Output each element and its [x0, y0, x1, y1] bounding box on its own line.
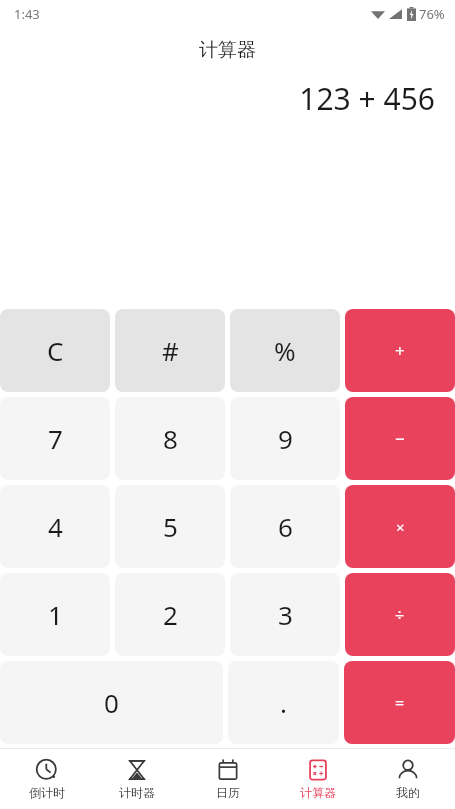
button[interactable]: ÷ — [345, 573, 455, 656]
button[interactable]: 计算器 — [275, 749, 361, 809]
button[interactable]: 7 — [0, 397, 110, 480]
staticText: 我的 — [396, 785, 420, 800]
staticText: 6 — [278, 509, 293, 544]
staticText: − — [395, 427, 405, 450]
button[interactable]: 计时器 — [94, 749, 180, 809]
button[interactable]: 8 — [115, 397, 225, 480]
button[interactable]: 3 — [230, 573, 340, 656]
staticText: 1 — [48, 597, 63, 632]
button[interactable]: × — [345, 485, 455, 568]
staticText: 2 — [163, 597, 178, 632]
button[interactable]: = — [344, 661, 455, 744]
button[interactable]: 我的 — [365, 749, 451, 809]
staticText: = — [395, 692, 405, 714]
staticText: C — [47, 333, 64, 368]
button[interactable]: # — [115, 309, 225, 392]
staticText: 计算器 — [199, 38, 256, 62]
staticText: 4 — [48, 509, 63, 544]
staticText: 日历 — [216, 785, 240, 800]
staticText: 7 — [48, 421, 63, 456]
staticText: 76% — [419, 5, 445, 23]
button[interactable]: 日历 — [185, 749, 271, 809]
button[interactable]: 5 — [115, 485, 225, 568]
staticText: % — [274, 333, 296, 368]
button[interactable]: 4 — [0, 485, 110, 568]
staticText: 计时器 — [119, 785, 155, 800]
staticText: × — [396, 517, 405, 537]
staticText: 9 — [278, 421, 293, 456]
button[interactable]: C — [0, 309, 110, 392]
staticText: 倒计时 — [29, 785, 65, 800]
staticText: 3 — [278, 597, 293, 632]
button[interactable]: 2 — [115, 573, 225, 656]
button[interactable]: % — [230, 309, 340, 392]
button[interactable]: + — [345, 309, 455, 392]
button[interactable]: 倒计时 — [4, 749, 90, 809]
button[interactable]: − — [345, 397, 455, 480]
staticText: + — [395, 339, 405, 362]
button[interactable]: . — [228, 661, 339, 744]
button[interactable]: 1 — [0, 573, 110, 656]
staticText: 123 + 456 — [299, 78, 435, 119]
staticText: 1:43 — [14, 5, 40, 23]
staticText: 0 — [104, 685, 119, 720]
staticText: 5 — [163, 509, 178, 544]
staticText: 8 — [163, 421, 178, 456]
button[interactable]: 6 — [230, 485, 340, 568]
staticText: . — [280, 685, 287, 720]
button[interactable]: 9 — [230, 397, 340, 480]
button[interactable]: 0 — [0, 661, 223, 744]
staticText: 计算器 — [300, 785, 336, 800]
staticText: ÷ — [395, 604, 405, 626]
staticText: # — [162, 333, 179, 368]
